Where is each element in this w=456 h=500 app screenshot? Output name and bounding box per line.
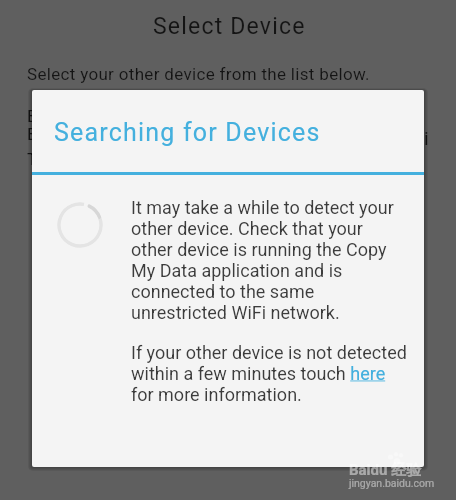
button[interactable]: If your other device is not detected wit… (131, 342, 407, 405)
staticText: jingyan.baidu.com (349, 477, 435, 489)
button[interactable]: Bluetooth devices (27, 106, 417, 126)
button[interactable]: This device (27, 148, 417, 170)
staticText: Searching for Devices (54, 118, 321, 147)
staticText: Baidu 经验 (349, 461, 422, 480)
staticText: This device (27, 149, 113, 169)
staticText: Select your other device from the list b… (27, 64, 370, 84)
staticText: It may take a while to detect your other… (131, 197, 394, 323)
other: Searching (56, 201, 104, 249)
staticText: Bluetooth devices (27, 106, 162, 126)
button[interactable]: Bonded devices (27, 124, 417, 144)
staticText: i (424, 127, 429, 149)
staticText: Select Device (153, 13, 306, 40)
staticText: Bonded devices (27, 124, 147, 144)
staticText: If your other device is not detected wit… (131, 342, 407, 405)
